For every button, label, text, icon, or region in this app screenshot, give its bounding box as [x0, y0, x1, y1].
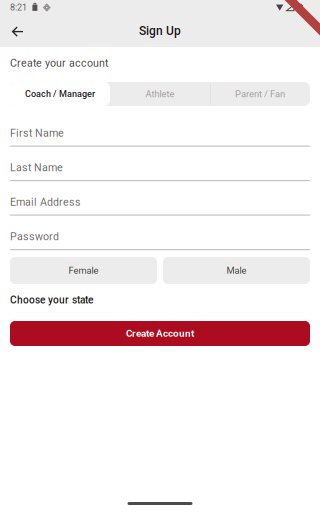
staticText: Choose your state: [10, 294, 93, 306]
staticText: Sign Up: [139, 24, 181, 38]
staticText: Email Address: [10, 196, 81, 208]
staticText: Create your account: [10, 57, 108, 69]
button[interactable]: Female: [10, 257, 157, 284]
staticText: Create Account: [126, 328, 194, 339]
staticText: Coach / Manager: [25, 89, 95, 99]
staticText: Athlete: [145, 88, 174, 99]
button[interactable]: Create Account: [10, 321, 310, 346]
button[interactable]: Athlete: [110, 82, 210, 106]
button[interactable]: Parent / Fan: [210, 82, 310, 106]
button[interactable]: Back: [2, 16, 32, 45]
staticText: Female: [68, 265, 98, 276]
staticText: Password: [10, 230, 59, 243]
staticText: Parent / Fan: [235, 88, 285, 99]
staticText: Male: [226, 265, 246, 276]
staticText: 8:21: [10, 2, 27, 13]
staticText: Last Name: [10, 161, 63, 174]
button[interactable]: Male: [163, 257, 310, 284]
staticText: First Name: [10, 127, 64, 139]
button[interactable]: Coach / Manager: [10, 82, 110, 106]
